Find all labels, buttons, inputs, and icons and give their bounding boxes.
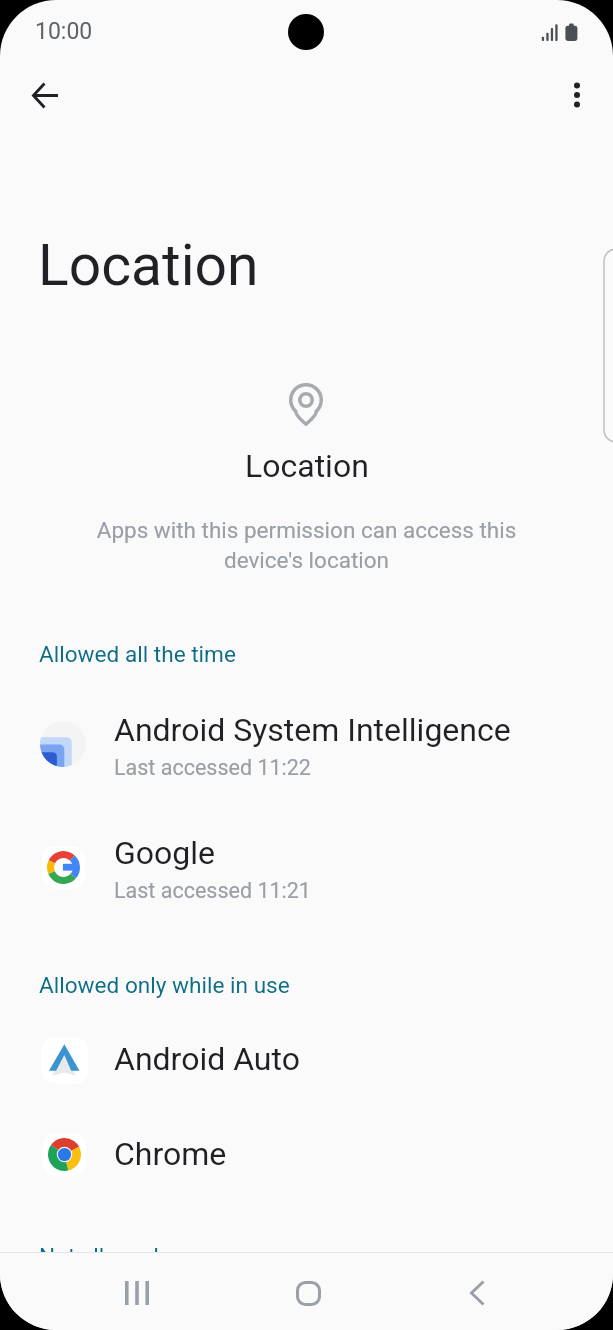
staticText: Last accessed 11:22 bbox=[114, 755, 311, 780]
staticText: Last accessed 11:21 bbox=[114, 878, 311, 903]
button[interactable]: Recent apps bbox=[108, 1264, 166, 1322]
button[interactable]: Android System Intelligence bbox=[0, 711, 613, 801]
staticText: Chrome bbox=[114, 1135, 227, 1173]
button[interactable]: Android Auto bbox=[0, 1040, 613, 1102]
staticText: Android System Intelligence bbox=[114, 711, 511, 749]
button[interactable]: Google bbox=[0, 834, 613, 924]
button[interactable]: More options bbox=[548, 66, 606, 124]
staticText: Allowed only while in use bbox=[39, 972, 290, 998]
staticText: Apps with this permission can access thi… bbox=[80, 517, 533, 573]
staticText: 10:00 bbox=[35, 18, 93, 45]
button[interactable]: Chrome bbox=[0, 1135, 613, 1197]
staticText: Not allowed bbox=[39, 1243, 159, 1269]
staticText: Android Auto bbox=[114, 1040, 300, 1078]
button[interactable]: Navigate up bbox=[16, 66, 74, 124]
staticText: Allowed all the time bbox=[39, 641, 236, 667]
button[interactable]: Back bbox=[448, 1264, 506, 1322]
staticText: Location bbox=[245, 447, 369, 485]
staticText: Google bbox=[114, 834, 216, 872]
staticText: Location bbox=[38, 232, 259, 299]
button[interactable]: Home bbox=[279, 1264, 337, 1322]
